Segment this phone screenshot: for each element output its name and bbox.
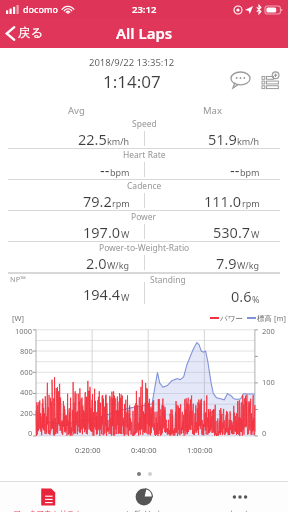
- staticText: 0:40:00: [131, 445, 157, 455]
- staticText: W/kg: [107, 259, 130, 271]
- staticText: 0.6: [231, 286, 252, 306]
- staticText: 111.0: [204, 191, 242, 210]
- staticText: 0: [262, 428, 267, 438]
- staticText: km/h: [107, 135, 130, 147]
- staticText: 22.5: [78, 129, 107, 148]
- staticText: 79.2: [83, 191, 112, 210]
- staticText: Standing: [150, 274, 186, 286]
- staticText: Power: [131, 211, 157, 222]
- button[interactable]: Add to list: [258, 68, 282, 92]
- staticText: 2.0: [86, 253, 107, 272]
- staticText: 0: [28, 428, 33, 438]
- button[interactable]: もっと: [192, 482, 288, 512]
- staticText: bpm: [110, 166, 130, 178]
- staticText: [W]: [12, 313, 24, 323]
- staticText: rpm: [112, 197, 130, 209]
- staticText: Power-to-Weight-Ratio: [99, 242, 190, 253]
- staticText: もっと: [192, 509, 288, 512]
- staticText: All Laps: [116, 23, 173, 43]
- staticText: 400: [20, 387, 33, 397]
- staticText: --: [230, 160, 240, 179]
- staticText: W: [121, 228, 130, 240]
- staticText: 600: [20, 367, 33, 377]
- staticText: NP™: [10, 274, 27, 284]
- staticText: 530.7: [213, 222, 251, 241]
- staticText: W/kg: [237, 259, 260, 271]
- staticText: km/h: [237, 135, 260, 147]
- staticText: パワー: [220, 314, 243, 323]
- staticText: 標高: [257, 314, 272, 323]
- staticText: 100: [262, 377, 275, 387]
- staticText: 7.9: [216, 253, 237, 272]
- staticText: 800: [20, 346, 33, 356]
- staticText: Heart Rate: [123, 149, 166, 160]
- staticText: [m]: [274, 313, 286, 323]
- staticText: Speed: [132, 118, 157, 129]
- staticText: 200: [20, 408, 33, 418]
- staticText: 194.4: [83, 284, 121, 304]
- staticText: --: [100, 160, 110, 179]
- staticText: 2018/9/22 13:35:12: [89, 56, 175, 69]
- staticText: docomo: [23, 3, 59, 15]
- staticText: Avg: [68, 104, 85, 117]
- staticText: W: [121, 291, 130, 303]
- staticText: rpm: [242, 197, 260, 209]
- staticText: 1000: [15, 326, 33, 336]
- staticText: %: [252, 293, 260, 305]
- staticText: bpm: [240, 166, 260, 178]
- staticText: セグメント: [96, 509, 192, 512]
- staticText: Cadence: [127, 180, 162, 191]
- button[interactable]: Comments: [228, 68, 252, 92]
- staticText: 1:14:07: [103, 70, 161, 93]
- staticText: 197.0: [83, 222, 121, 241]
- staticText: 0:20:00: [75, 445, 101, 455]
- button[interactable]: 戻る: [0, 18, 52, 48]
- staticText: W: [251, 228, 260, 240]
- staticText: 戻る: [18, 25, 44, 41]
- button[interactable]: ワークアウトリスト: [0, 482, 96, 512]
- staticText: 200: [262, 326, 275, 336]
- staticText: ワークアウトリスト: [0, 509, 96, 512]
- staticText: 23:12: [132, 3, 157, 16]
- staticText: 51.9: [208, 129, 237, 148]
- staticText: 1:00:00: [187, 445, 213, 455]
- staticText: Max: [203, 104, 222, 117]
- button[interactable]: セグメント: [96, 482, 192, 512]
